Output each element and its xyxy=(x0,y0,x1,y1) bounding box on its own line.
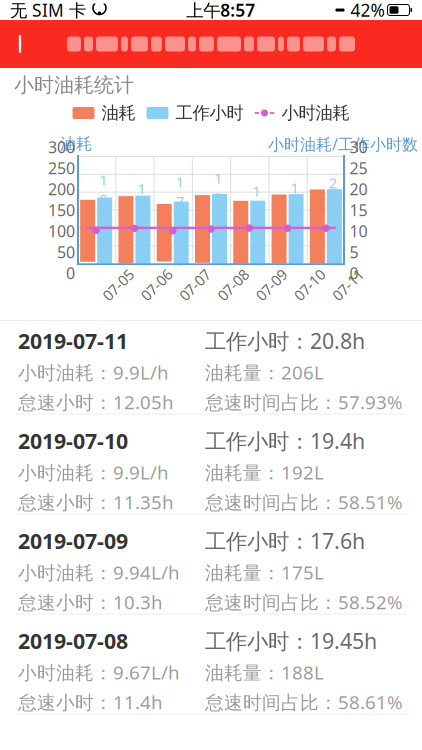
staticText: 小时油耗：9.9L/h xyxy=(18,360,169,385)
staticText: 0 xyxy=(66,262,75,284)
staticText: 工作小时：17.6h xyxy=(205,526,365,555)
staticText: 怠速时间占比：58.52% xyxy=(205,590,403,614)
staticText: 0 xyxy=(349,262,358,284)
staticText: 300 xyxy=(48,136,75,158)
staticText: 工作小时：19.4h xyxy=(205,426,365,455)
staticText: 工作小时 xyxy=(175,102,243,124)
staticText: 17.6 xyxy=(252,181,260,259)
staticText: 07-10 xyxy=(291,275,328,295)
staticText: 07-07 xyxy=(176,275,213,295)
staticText: 小时油耗：9.9L/h xyxy=(18,460,169,485)
staticText: 18.45 xyxy=(99,170,107,267)
staticText: 小时油耗：9.94L/h xyxy=(18,560,180,585)
button[interactable]: 2019-07-10 xyxy=(0,421,422,521)
staticText: 5 xyxy=(349,241,358,263)
staticText: 07-05 xyxy=(100,275,137,295)
staticText: 20.8 xyxy=(329,173,337,251)
staticText: 怠速时间占比：58.51% xyxy=(205,490,403,514)
staticText: 07-09 xyxy=(253,275,290,295)
button[interactable]: 2019-07-11 xyxy=(0,321,422,421)
button[interactable]: 2019-07-09 xyxy=(0,521,422,621)
staticText: 50 xyxy=(57,241,75,263)
staticText: 07-08 xyxy=(214,275,251,295)
staticText: 25 xyxy=(349,157,367,179)
staticText: 100 xyxy=(48,220,75,242)
staticText: 油耗量：175L xyxy=(205,560,324,585)
staticText xyxy=(86,0,92,25)
staticText: 小时油耗：9.67L/h xyxy=(18,660,180,685)
staticText: 油耗量：188L xyxy=(205,660,324,685)
staticText: 小时油耗 xyxy=(281,102,349,124)
staticText: 怠速小时：12.05h xyxy=(18,390,174,414)
staticText: 油耗量：192L xyxy=(205,460,324,485)
staticText: 2019-07-10 xyxy=(18,426,128,455)
staticText: 30 xyxy=(349,136,367,158)
staticText: 42% xyxy=(345,0,384,21)
staticText: 怠速小时：11.35h xyxy=(18,490,174,514)
staticText: 19.45 xyxy=(214,168,222,266)
staticText: 怠速时间占比：57.93% xyxy=(205,390,403,414)
staticText: 250 xyxy=(48,157,75,179)
staticText: 17.35 xyxy=(176,172,184,269)
staticText: 2019-07-11 xyxy=(18,326,128,355)
staticText: 2019-07-09 xyxy=(18,526,128,555)
staticText: 150 xyxy=(48,199,75,221)
staticText: 怠速小时：11.4h xyxy=(18,690,163,714)
staticText: 15 xyxy=(349,199,367,221)
button[interactable]: 返回 xyxy=(0,20,44,68)
staticText: 小时油耗统计 xyxy=(14,73,134,97)
staticText: 07-11 xyxy=(329,275,366,295)
staticText: 上午8:57 xyxy=(186,0,255,21)
staticText: 10 xyxy=(349,220,367,242)
staticText: 19.4 xyxy=(291,178,299,256)
staticText: 工作小时：20.8h xyxy=(205,326,365,355)
staticText: 怠速时间占比：58.61% xyxy=(205,690,403,714)
staticText: 200 xyxy=(48,178,75,200)
staticText: 07-06 xyxy=(138,275,175,295)
staticText: 油耗 xyxy=(101,102,135,124)
staticText: 2019-07-08 xyxy=(18,626,128,655)
staticText: 油耗 xyxy=(60,134,92,154)
staticText: 19.0 xyxy=(137,179,145,257)
staticText: 油耗量：206L xyxy=(205,360,324,385)
staticText: 怠速小时：10.3h xyxy=(18,590,163,614)
button[interactable]: 2019-07-08 xyxy=(0,621,422,721)
staticText: 20 xyxy=(349,178,367,200)
staticText: 工作小时：19.45h xyxy=(205,626,377,655)
staticText: 小时油耗/工作小时数 xyxy=(268,133,418,155)
staticText: 无 SIM 卡 xyxy=(10,0,86,21)
